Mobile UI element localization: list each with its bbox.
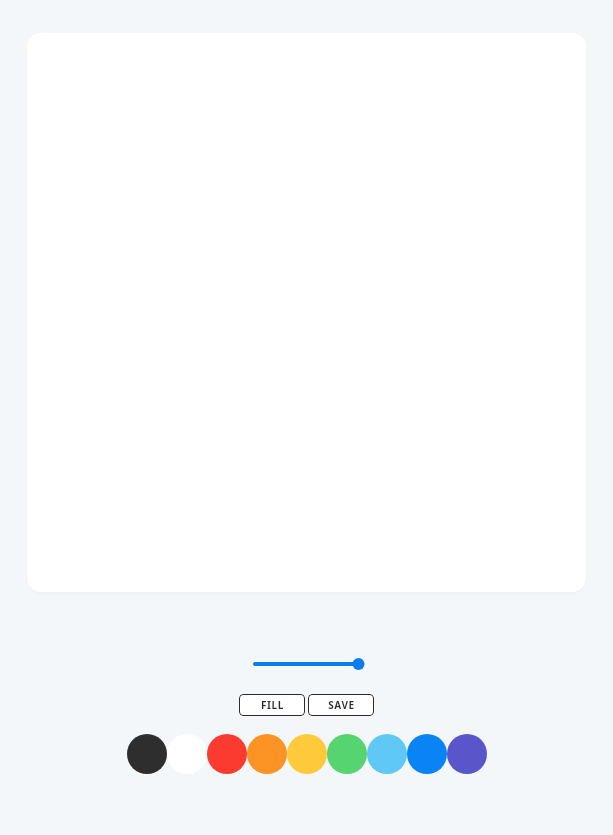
button[interactable]: SAVE bbox=[308, 694, 374, 716]
button[interactable]: FILL bbox=[239, 694, 305, 716]
button[interactable]: Color swatch bbox=[327, 734, 367, 774]
staticText: SAVE bbox=[328, 698, 355, 712]
button[interactable]: Color swatch bbox=[127, 734, 167, 774]
button[interactable]: Brush size bbox=[249, 652, 365, 676]
button[interactable]: Color swatch bbox=[207, 734, 247, 774]
staticText: FILL bbox=[261, 698, 284, 712]
button[interactable]: Color swatch bbox=[247, 734, 287, 774]
button[interactable]: Color swatch bbox=[367, 734, 407, 774]
button[interactable]: Color swatch bbox=[407, 734, 447, 774]
button[interactable]: Color swatch bbox=[167, 734, 207, 774]
button[interactable]: Color swatch bbox=[447, 734, 487, 774]
button[interactable]: Color swatch bbox=[287, 734, 327, 774]
